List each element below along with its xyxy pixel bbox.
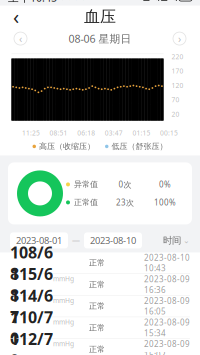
staticText: 正常 [89, 258, 105, 268]
staticText: ‹ [19, 31, 22, 46]
staticText: 低压（舒张压） [111, 141, 167, 151]
staticText: 2023-08-10 [90, 234, 136, 247]
button[interactable]: 时间 [163, 232, 190, 248]
staticText: 115/68 [10, 263, 53, 306]
staticText: 170 [171, 66, 183, 75]
staticText: 220 [171, 52, 183, 61]
staticText: 2023-08-09 15:34 [144, 317, 190, 338]
staticText: mmHg [53, 339, 74, 348]
button[interactable]: 返回 [4, 6, 28, 28]
button[interactable]: 110/70 [0, 317, 200, 339]
staticText: 112/70 [10, 328, 53, 355]
button[interactable]: 115/68 [0, 274, 200, 296]
staticText: 00:15 [160, 129, 178, 137]
staticText: 0% [159, 179, 171, 190]
staticText: ‹ [13, 3, 19, 30]
button[interactable]: 114/67 [0, 296, 200, 317]
staticText: mmHg [53, 274, 74, 283]
staticText: 03:47 [105, 129, 123, 137]
staticText: 血压 [84, 7, 116, 26]
staticText: mmHg [53, 317, 74, 326]
staticText: 2023-08-09 16:05 [144, 295, 190, 317]
staticText: 2023-08-09 15:02 [144, 339, 190, 355]
button[interactable]: 前一天 [14, 32, 27, 45]
staticText: 2023-08-01 [16, 234, 62, 247]
staticText: 108/68 [10, 242, 53, 284]
staticText: 20 [171, 110, 179, 119]
staticText: › [178, 31, 181, 46]
staticText: 70 [171, 95, 179, 104]
staticText: 08:51 [50, 129, 68, 137]
staticText: ⌄ [183, 236, 190, 245]
staticText: 110/70 [10, 306, 53, 349]
staticText: mmHg [53, 296, 74, 305]
staticText: 06:18 [77, 129, 95, 137]
staticText: 异常值 [74, 179, 98, 189]
staticText: 120 [171, 81, 183, 90]
staticText: 正常 [89, 323, 105, 333]
staticText: 01:15 [132, 129, 150, 137]
staticText: 正常 [89, 280, 105, 289]
staticText: 正常 [89, 301, 105, 311]
staticText: 2023-08-09 16:36 [144, 274, 190, 295]
staticText: 正常 [89, 344, 105, 354]
staticText: 114/67 [10, 285, 53, 327]
button[interactable]: 108/68 [0, 252, 200, 274]
button[interactable]: 2023-08-10 [84, 232, 142, 248]
staticText: 时间 [163, 235, 181, 246]
staticText: 2023-08-10 10:43 [144, 252, 190, 273]
staticText: 正常值 [74, 197, 98, 207]
staticText: 08-06 星期日 [68, 31, 131, 46]
button[interactable]: 2023-08-01 [10, 232, 68, 248]
staticText: 0次 [118, 179, 131, 190]
staticText: 高压（收缩压） [39, 141, 95, 151]
staticText: 100% [154, 197, 176, 208]
staticText: 23次 [116, 197, 134, 208]
staticText: 11:25 [22, 129, 40, 137]
button[interactable]: 112/70 [0, 339, 200, 355]
button[interactable]: 后一天 [173, 32, 186, 45]
staticText: — [72, 235, 80, 246]
staticText: 上午10:45 [8, 0, 57, 5]
